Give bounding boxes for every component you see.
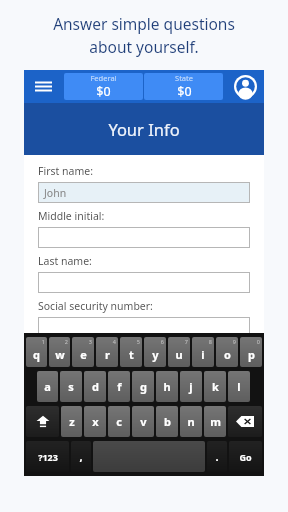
button[interactable]: b xyxy=(156,406,178,437)
button[interactable]: v xyxy=(132,406,154,437)
staticText: John xyxy=(44,186,67,200)
staticText: $0 xyxy=(96,83,111,100)
staticText: 1 xyxy=(26,338,45,345)
button[interactable]: s xyxy=(60,371,82,402)
button[interactable]: m xyxy=(204,406,226,437)
button[interactable]: 7 xyxy=(168,337,190,367)
staticText: 2 xyxy=(49,338,68,345)
button[interactable]: 6 xyxy=(144,337,166,367)
button[interactable]: 1 xyxy=(26,337,47,367)
button[interactable] xyxy=(38,227,250,248)
staticText: x xyxy=(92,414,99,429)
button[interactable]: . xyxy=(207,441,227,472)
staticText: Social security number: xyxy=(38,299,250,313)
staticText: Last name: xyxy=(38,254,250,268)
staticText: c xyxy=(116,414,122,429)
button[interactable]: ?123 xyxy=(26,441,69,472)
staticText: State xyxy=(175,73,193,83)
button[interactable]: Go xyxy=(229,441,262,472)
button[interactable]: k xyxy=(204,371,226,402)
staticText: a xyxy=(44,379,51,394)
staticText: m xyxy=(210,414,221,429)
staticText: b xyxy=(164,414,171,429)
staticText: g xyxy=(140,379,147,394)
button[interactable]: z xyxy=(61,406,82,437)
staticText: ?123 xyxy=(38,451,58,463)
button[interactable]: John xyxy=(38,182,250,203)
button[interactable]: 2 xyxy=(49,337,70,367)
staticText: 8 xyxy=(192,338,212,345)
button[interactable]: Space xyxy=(93,441,205,472)
staticText: 4 xyxy=(96,338,116,345)
staticText: 0 xyxy=(240,338,260,345)
button[interactable]: Backspace xyxy=(228,406,262,437)
staticText: 7 xyxy=(168,338,188,345)
staticText: s xyxy=(68,379,74,394)
button[interactable]: a xyxy=(37,371,58,402)
button[interactable]: 3 xyxy=(72,337,94,367)
staticText: q xyxy=(33,347,40,362)
staticText: k xyxy=(212,379,219,394)
button[interactable]: Menu xyxy=(24,70,62,103)
staticText: r xyxy=(105,347,110,362)
staticText: . xyxy=(215,449,219,464)
button[interactable]: n xyxy=(180,406,202,437)
staticText: First name: xyxy=(38,164,250,178)
staticText: Go xyxy=(239,451,252,463)
staticText: 9 xyxy=(216,338,236,345)
button[interactable]: x xyxy=(84,406,106,437)
staticText: t xyxy=(129,347,134,362)
staticText: z xyxy=(69,414,75,429)
staticText: i xyxy=(201,347,205,362)
staticText: 5 xyxy=(120,338,140,345)
staticText: u xyxy=(175,347,183,362)
button[interactable]: Shift xyxy=(26,406,59,437)
staticText: Federal xyxy=(90,73,117,83)
staticText: o xyxy=(224,347,231,362)
button[interactable]: Account xyxy=(226,70,264,103)
staticText: h xyxy=(163,379,171,394)
staticText: 6 xyxy=(144,338,164,345)
button[interactable]: h xyxy=(156,371,178,402)
button[interactable]: State xyxy=(144,73,223,100)
staticText: 3 xyxy=(72,338,92,345)
staticText: $0 xyxy=(177,83,192,100)
button[interactable] xyxy=(38,272,250,293)
button[interactable]: 0 xyxy=(240,337,262,367)
staticText: d xyxy=(92,379,99,394)
button[interactable] xyxy=(38,317,250,338)
button[interactable]: l xyxy=(228,371,250,402)
staticText: j xyxy=(189,379,193,394)
button[interactable]: j xyxy=(180,371,202,402)
button[interactable]: Federal xyxy=(64,73,143,100)
staticText: w xyxy=(55,347,65,362)
staticText: f xyxy=(117,379,122,394)
button[interactable]: g xyxy=(132,371,154,402)
button[interactable]: 9 xyxy=(216,337,238,367)
button[interactable]: 4 xyxy=(96,337,118,367)
staticText: , xyxy=(79,449,83,464)
button[interactable]: 8 xyxy=(192,337,214,367)
staticText: p xyxy=(248,347,255,362)
button[interactable]: c xyxy=(108,406,130,437)
staticText: l xyxy=(237,379,241,394)
staticText: Middle initial: xyxy=(38,209,250,223)
staticText: Your Info xyxy=(108,118,180,140)
staticText: Answer simple questions xyxy=(53,13,235,34)
staticText: e xyxy=(80,347,87,362)
staticText: about yourself. xyxy=(89,36,199,57)
staticText: v xyxy=(140,414,147,429)
button[interactable]: f xyxy=(108,371,130,402)
button[interactable]: d xyxy=(84,371,106,402)
staticText: n xyxy=(187,414,195,429)
staticText: y xyxy=(152,347,159,362)
button[interactable]: , xyxy=(71,441,91,472)
button[interactable]: 5 xyxy=(120,337,142,367)
